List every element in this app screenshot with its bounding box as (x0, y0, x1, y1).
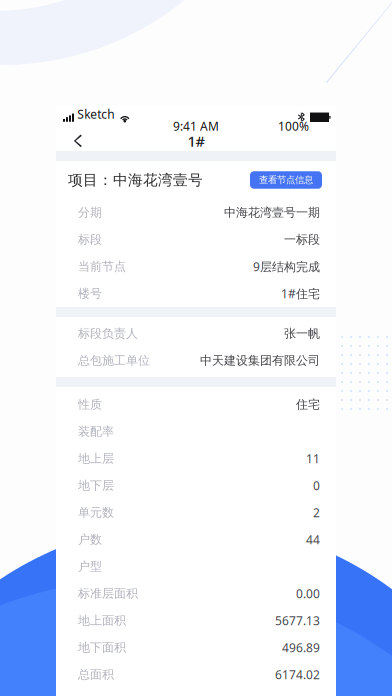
staticText: 1#住宅 (281, 285, 320, 301)
staticText: 住宅 (296, 397, 320, 412)
staticText: 100% (278, 118, 309, 134)
staticText: 总面积 (78, 667, 114, 682)
staticText: 项目：中海花湾壹号 (68, 171, 203, 189)
staticText: 一标段 (284, 232, 320, 247)
staticText: 11 (306, 450, 320, 466)
staticText: 楼号 (78, 286, 102, 301)
staticText: 当前节点 (78, 259, 126, 274)
staticText: 户型 (78, 559, 102, 574)
staticText: 装配率 (78, 424, 114, 439)
staticText: Sketch (77, 106, 114, 122)
staticText: 标准层面积 (78, 586, 138, 601)
staticText: 地下面积 (78, 640, 126, 655)
staticText: 地上面积 (78, 613, 126, 628)
staticText: 单元数 (78, 505, 114, 520)
button[interactable]: Back (56, 131, 99, 151)
staticText: 5677.13 (275, 612, 320, 628)
staticText: 标段 (78, 232, 102, 247)
staticText: 0 (313, 477, 320, 493)
staticText: 9层结构完成 (253, 258, 320, 274)
staticText: 496.89 (282, 639, 320, 655)
staticText: 地上层 (78, 451, 114, 466)
staticText: 1# (187, 131, 204, 151)
staticText: 张一帆 (284, 326, 320, 341)
staticText: 标段负责人 (78, 326, 138, 341)
staticText: 户数 (78, 532, 102, 547)
staticText: 2 (313, 504, 320, 520)
staticText: 性质 (78, 397, 102, 412)
staticText: 总包施工单位 (78, 353, 150, 368)
staticText: 0.00 (296, 585, 320, 601)
staticText: 中海花湾壹号一期 (224, 205, 320, 220)
staticText: 地下层 (78, 478, 114, 493)
staticText: 分期 (78, 205, 102, 220)
staticText: 查看节点信息 (259, 174, 313, 186)
staticText: 9:41 AM (173, 118, 219, 134)
staticText: 44 (306, 531, 320, 547)
staticText: 6174.02 (275, 666, 320, 682)
staticText: 中天建设集团有限公司 (200, 353, 320, 368)
button[interactable]: 查看节点信息 (250, 171, 322, 189)
